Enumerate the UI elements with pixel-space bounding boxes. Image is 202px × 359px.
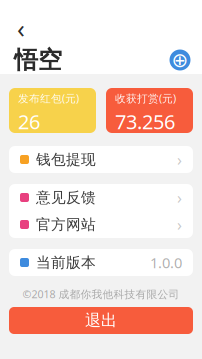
staticText: 当前版本: [36, 253, 96, 271]
staticText: ›: [177, 187, 182, 208]
staticText: 发布红包(元): [18, 91, 79, 105]
staticText: ›: [177, 149, 182, 170]
button[interactable]: 意见反馈: [9, 184, 193, 211]
button[interactable]: Profile: [167, 47, 193, 73]
button[interactable]: Back: [8, 17, 34, 39]
staticText: ‹: [17, 11, 25, 45]
staticText: ›: [177, 214, 182, 235]
button[interactable]: 退出: [9, 307, 193, 334]
staticText: 26: [18, 108, 40, 135]
staticText: 退出: [85, 311, 117, 330]
button[interactable]: 钱包提现: [9, 146, 193, 173]
staticText: 钱包提现: [36, 150, 96, 168]
staticText: 73.256: [115, 108, 175, 135]
staticText: 1.0.0: [150, 253, 182, 272]
staticText: ©2018 成都你我他科技有限公司: [22, 287, 179, 301]
staticText: ⊕: [171, 49, 188, 71]
button[interactable]: 官方网站: [9, 211, 193, 238]
staticText: 收获打赏(元): [115, 91, 176, 105]
staticText: 意见反馈: [36, 188, 96, 206]
staticText: 官方网站: [36, 215, 96, 233]
staticText: 悟空: [14, 45, 62, 75]
